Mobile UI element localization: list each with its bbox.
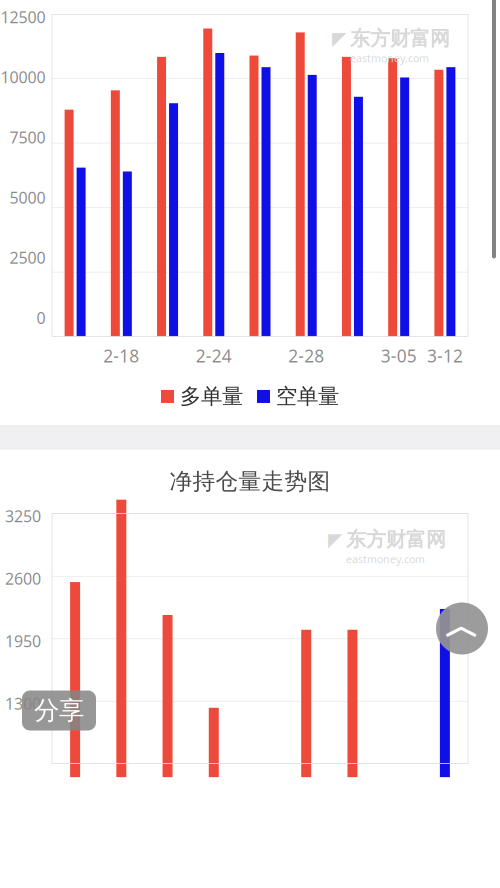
staticText: 2-18 <box>103 344 139 367</box>
staticText: 3-05 <box>381 344 417 367</box>
staticText: 3-12 <box>427 344 463 367</box>
staticText: ◤ <box>328 529 342 550</box>
staticText: 2-24 <box>196 344 232 367</box>
staticText: 0 <box>36 307 45 328</box>
staticText: 净持仓量走势图 <box>169 468 330 495</box>
button[interactable]: 分享 <box>22 690 96 730</box>
staticText: 10000 <box>0 66 45 88</box>
button[interactable]: Scroll to top <box>436 602 488 654</box>
staticText: eastmoney.com <box>350 51 429 65</box>
staticText: 东方财富网 <box>346 527 446 552</box>
staticText: 多单量 <box>180 383 243 410</box>
staticText: 5000 <box>9 187 45 208</box>
staticText: 1950 <box>5 630 41 652</box>
staticText: 空单量 <box>276 383 339 410</box>
staticText: 分享 <box>34 695 84 726</box>
staticText: 2500 <box>9 247 45 268</box>
staticText: eastmoney.com <box>346 552 425 566</box>
staticText: ︿ <box>444 605 479 648</box>
staticText: 1300 <box>5 693 41 714</box>
staticText: 2-28 <box>288 344 324 367</box>
staticText: 3250 <box>5 505 41 527</box>
staticText: ◤ <box>332 28 346 49</box>
staticText: 东方财富网 <box>350 26 450 51</box>
staticText: 2600 <box>5 568 41 589</box>
staticText: 7500 <box>9 127 45 148</box>
staticText: 12500 <box>0 6 45 28</box>
